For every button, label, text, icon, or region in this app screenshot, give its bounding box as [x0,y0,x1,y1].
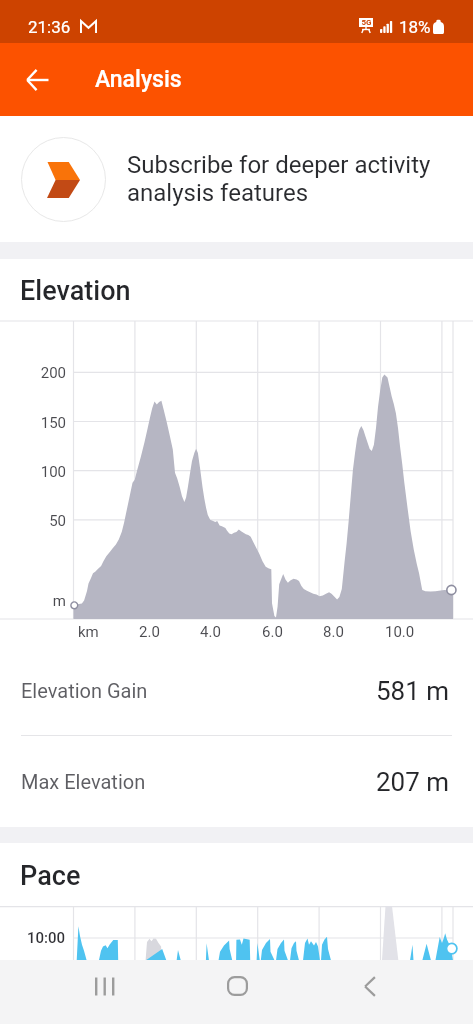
staticText: Elevation [20,275,131,307]
staticText: 6.0 [262,623,283,641]
staticText: 4.0 [200,623,221,641]
staticText: 207 m [376,767,450,797]
staticText: 150 [40,414,66,432]
staticText: 21:36 [28,17,71,37]
button[interactable]: Max Elevation [0,736,473,827]
staticText: 100 [40,463,66,481]
button[interactable]: Back [340,960,400,1012]
staticText: Max Elevation [21,770,146,793]
staticText: 10.0 [385,623,415,641]
staticText: 581 m [376,676,450,706]
button[interactable]: Back [0,43,74,116]
button[interactable]: Recent apps [75,960,135,1012]
staticText: 8.0 [323,623,344,641]
staticText: 10:00 [27,929,66,947]
staticText: 5G [361,18,372,27]
staticText: Analysis [95,66,182,93]
button[interactable]: Elevation Gain [0,640,473,735]
staticText: Pace [20,860,81,892]
staticText: 50 [49,512,66,530]
staticText: 18% [399,17,431,37]
staticText: m [52,592,66,610]
button[interactable]: Home [207,960,267,1012]
staticText: Elevation Gain [21,679,148,702]
staticText: 200 [40,364,66,382]
staticText: Subscribe for deeper activity analysis f… [127,151,431,207]
button[interactable]: Subscribe for deeper activity analysis f… [0,116,473,242]
staticText: 2.0 [139,623,160,641]
staticText: km [78,623,99,641]
